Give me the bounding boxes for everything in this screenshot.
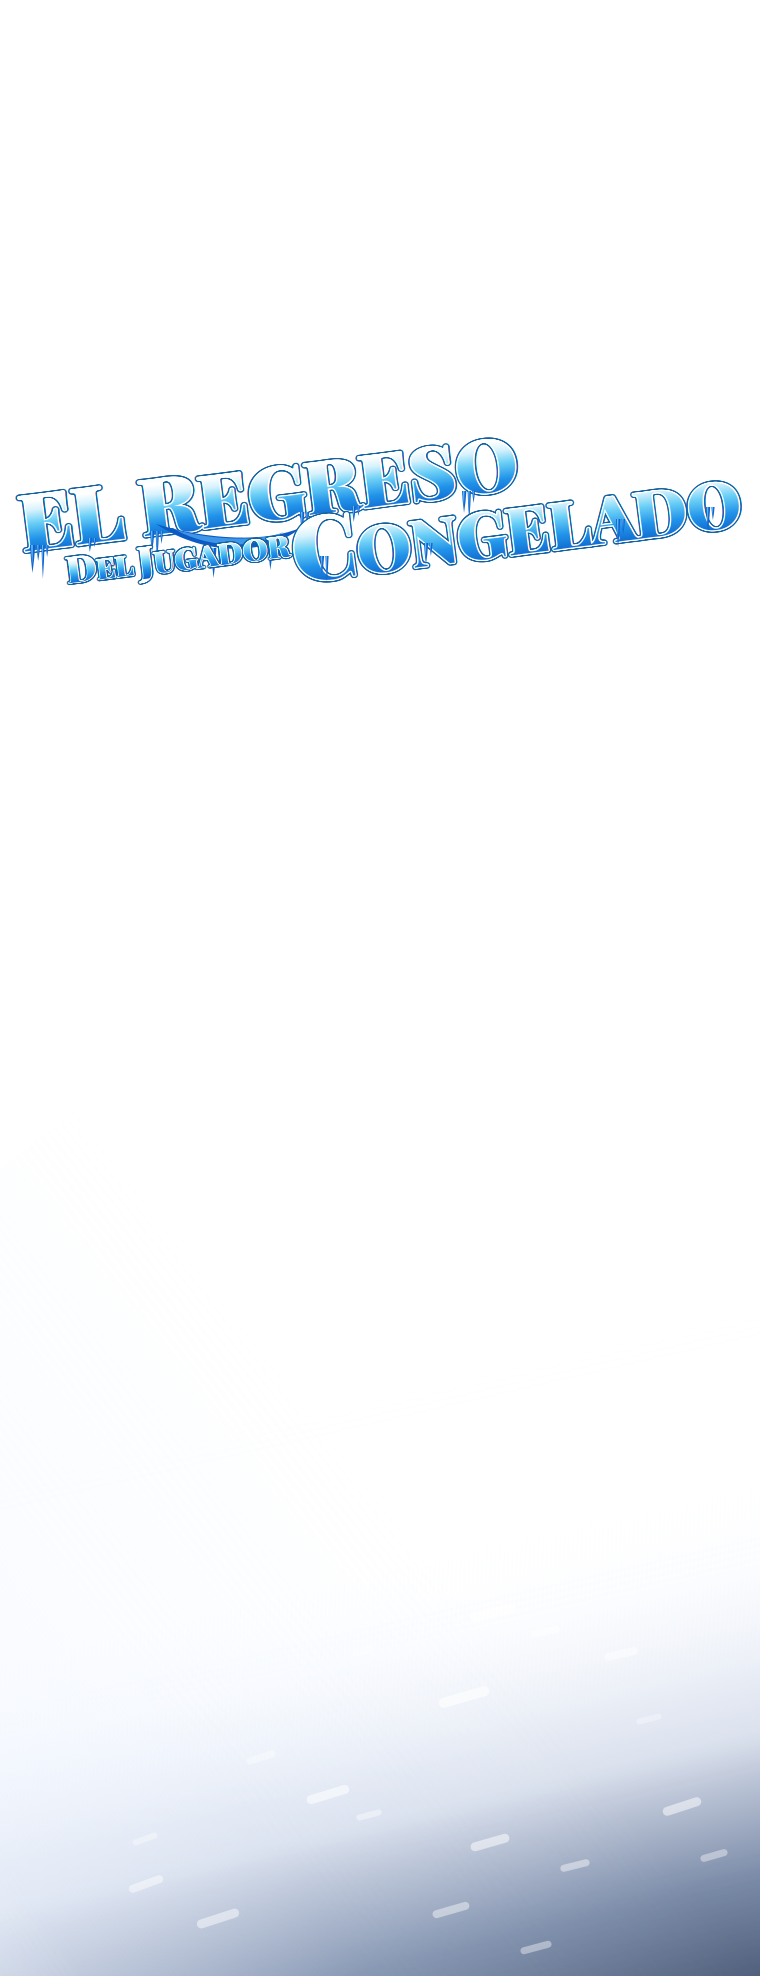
staticText: JUGADOR [140,524,286,575]
staticText: DEL [67,541,137,588]
staticText: DEL [67,540,137,587]
staticText: DEL [66,542,136,589]
staticText: JUGADOR [141,523,287,574]
staticText: CONGELADO [297,460,736,575]
staticText: CONGELADO [298,462,737,576]
staticText: JUGADOR [140,525,286,575]
staticText: CONGELADO [296,460,735,574]
staticText: CONGELADO [294,461,733,576]
staticText: EL REGRESO [32,440,506,540]
staticText: EL REGRESO [28,437,502,538]
staticText: JUGADOR [140,524,286,575]
staticText: EL REGRESO [33,440,507,540]
staticText: CONGELADO [298,460,737,574]
staticText: EL REGRESO [29,440,503,540]
staticText: EL REGRESO [30,437,504,538]
staticText: CONGELADO [293,461,732,575]
staticText: DEL [69,540,139,587]
staticText: CONGELADO [296,460,735,574]
staticText: CONGELADO [294,463,733,577]
staticText: EL REGRESO [30,437,504,537]
staticText: DEL [65,541,135,588]
staticText: JUGADOR [140,525,286,575]
staticText: CONGELADO [296,462,735,576]
staticText: CONGELADO [296,461,735,576]
staticText: JUGADOR [140,524,286,575]
staticText: CONGELADO [298,461,737,575]
staticText: CONGELADO [296,458,735,573]
staticText: DEL [69,541,139,588]
staticText: EL REGRESO [28,438,502,538]
staticText: JUGADOR [142,525,288,575]
staticText: JUGADOR [138,525,284,576]
staticText: EL REGRESO [31,439,505,539]
staticText: EL REGRESO [30,435,504,536]
staticText: CONGELADO [297,459,736,573]
staticText: CONGELADO [297,459,736,573]
staticText: EL REGRESO [33,436,507,536]
staticText: JUGADOR [139,523,285,574]
staticText: JUGADOR [140,527,286,577]
staticText: DEL [67,540,137,587]
staticText: CONGELADO [293,461,732,576]
staticText: EL REGRESO [31,435,505,536]
staticText: EL REGRESO [30,438,504,538]
staticText: EL REGRESO [33,438,507,539]
staticText: DEL [67,541,137,588]
staticText: EL REGRESO [31,437,505,537]
staticText: DEL [67,540,137,587]
staticText: JUGADOR [140,524,286,575]
staticText: EL REGRESO [30,439,504,539]
staticText: CONGELADO [296,460,735,575]
staticText: CONGELADO [294,459,733,573]
staticText: EL REGRESO [32,439,506,539]
staticText: EL REGRESO [31,440,505,541]
staticText: JUGADOR [139,526,285,576]
staticText: CONGELADO [293,459,732,574]
staticText: JUGADOR [142,525,288,576]
staticText: EL REGRESO [32,437,506,538]
staticText: DEL [67,542,137,589]
staticText: DEL [67,540,137,587]
staticText: DEL [67,541,137,588]
staticText: DEL [67,540,137,587]
staticText: EL REGRESO [32,438,506,538]
staticText: JUGADOR [142,524,288,575]
staticText: CONGELADO [297,463,736,577]
staticText: EL REGRESO [29,439,503,539]
staticText: JUGADOR [140,525,286,575]
staticText: JUGADOR [138,524,284,575]
staticText: EL REGRESO [30,440,504,540]
staticText: DEL [67,541,137,588]
staticText: DEL [67,541,137,588]
staticText: JUGADOR [140,525,286,575]
staticText: DEL [65,542,135,588]
staticText: EL REGRESO [30,435,504,536]
staticText: EL REGRESO [32,437,506,537]
staticText: EL REGRESO [28,438,502,539]
staticText: CONGELADO [297,461,736,575]
staticText: CONGELADO [295,460,734,574]
staticText: JUGADOR [140,525,286,575]
staticText: EL REGRESO [30,437,504,537]
staticText: JUGADOR [139,523,285,573]
staticText: DEL [67,540,137,587]
staticText: CONGELADO [295,462,734,576]
staticText: DEL [69,541,139,587]
staticText: DEL [68,539,138,586]
staticText: DEL [68,539,138,586]
staticText: JUGADOR [141,526,287,577]
staticText: DEL [67,541,137,587]
staticText: DEL [68,542,138,589]
staticText: JUGADOR [140,525,286,575]
staticText: JUGADOR [140,525,286,576]
staticText: DEL [66,539,136,586]
staticText: DEL [67,541,137,588]
staticText: EL REGRESO [29,436,503,537]
staticText: CONGELADO [297,461,736,575]
staticText: DEL [67,541,137,588]
staticText: EL REGRESO [32,440,506,541]
staticText: EL REGRESO [30,438,504,538]
staticText: JUGADOR [140,525,286,575]
staticText: CONGELADO [295,460,734,574]
